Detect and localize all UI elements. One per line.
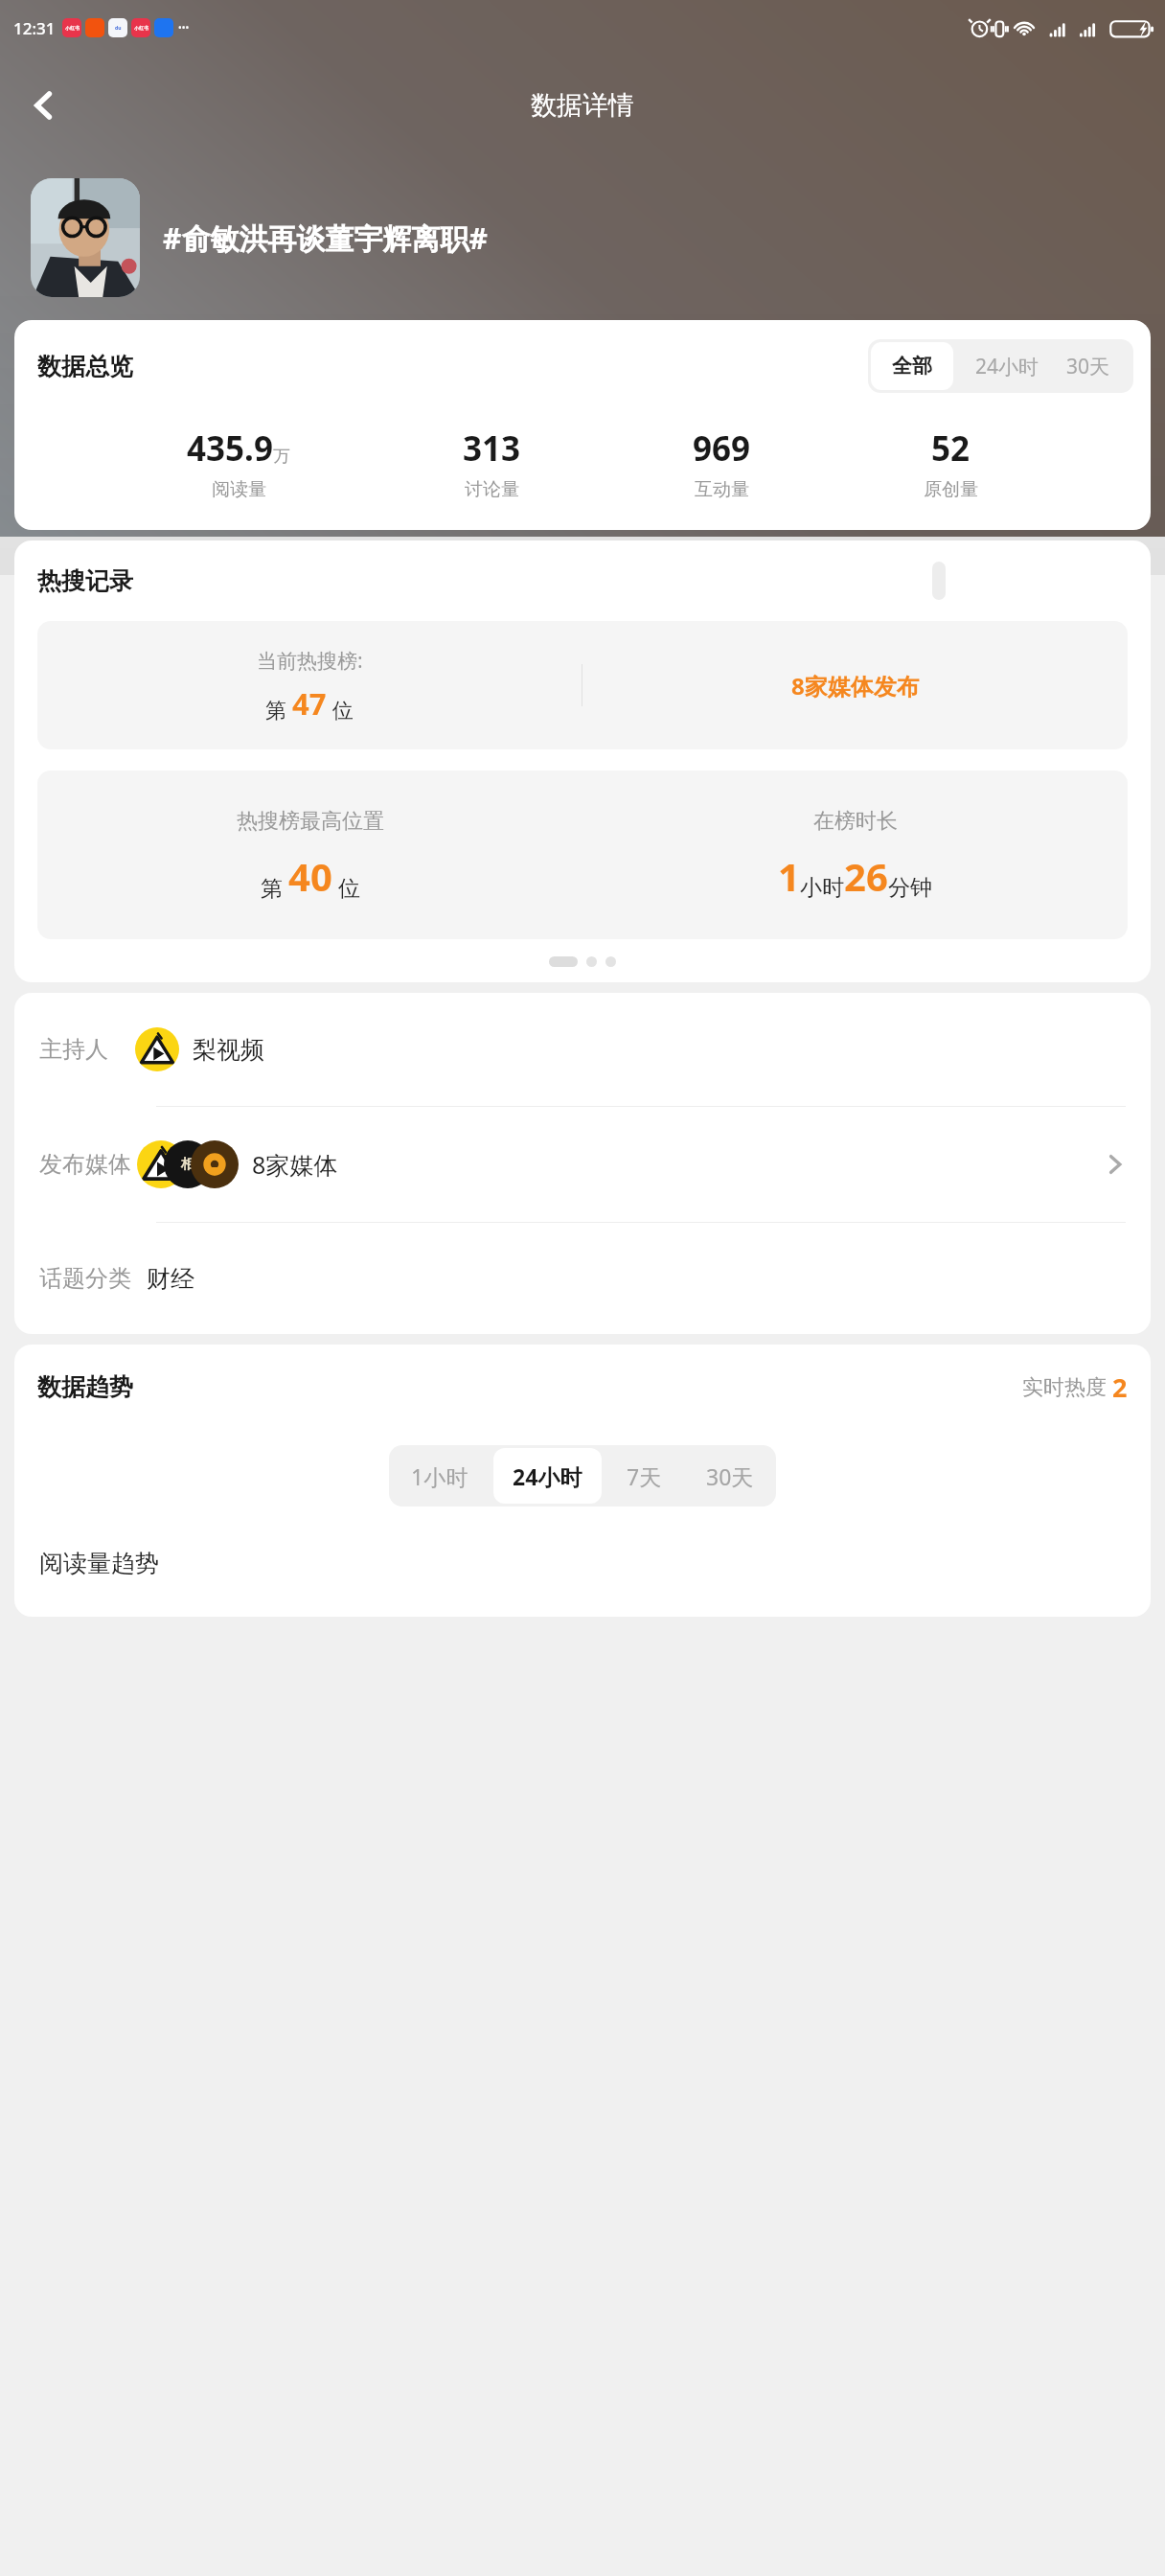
staticText: 阅读量趋势	[39, 1549, 159, 1578]
staticText: 万	[273, 446, 290, 468]
staticText: 435.9	[187, 425, 273, 471]
staticText: 热搜记录	[37, 566, 133, 596]
staticText: 30天	[1066, 353, 1110, 380]
staticText: 2	[1112, 1369, 1128, 1405]
staticText: 26	[844, 850, 888, 902]
button[interactable]: 发布媒体	[14, 1107, 1151, 1222]
staticText: 相	[181, 1156, 194, 1173]
staticText: 47	[292, 683, 327, 724]
button[interactable]: 主持人	[14, 993, 1151, 1106]
staticText: 梨视频	[193, 1035, 264, 1065]
staticText: 原创量	[924, 478, 978, 501]
staticText: 第	[261, 872, 288, 902]
staticText: 热搜榜最高位置	[237, 808, 384, 835]
staticText: 24小时	[975, 353, 1039, 380]
button[interactable]: 30天	[1059, 339, 1133, 393]
staticText: 话题分类	[39, 1264, 131, 1293]
button[interactable]: 返回	[10, 71, 79, 140]
staticText: 讨论量	[465, 478, 519, 501]
staticText: 数据趋势	[37, 1372, 133, 1402]
button[interactable]: 7天	[605, 1445, 684, 1506]
button[interactable]: 全部	[871, 342, 953, 390]
button[interactable]: 24小时	[956, 339, 1059, 393]
staticText: 实时热度	[1022, 1374, 1107, 1401]
staticText: 24小时	[513, 1461, 582, 1491]
staticText: 互动量	[695, 478, 749, 501]
staticText: 313	[463, 425, 521, 471]
staticText: 52	[931, 425, 971, 471]
staticText: 1	[778, 850, 800, 902]
button[interactable]: 30天	[684, 1445, 776, 1506]
staticText: du	[115, 25, 122, 32]
button[interactable]: 热搜榜最高位置	[37, 770, 1128, 939]
staticText: 30天	[706, 1461, 754, 1491]
staticText: 全部	[892, 354, 932, 379]
button[interactable]: 当前热搜榜:	[37, 621, 1128, 749]
staticText: 第	[265, 695, 292, 724]
staticText: 数据总览	[37, 352, 133, 381]
button[interactable]: #俞敏洪再谈董宇辉离职#	[31, 178, 1134, 297]
staticText: 8家媒体发布	[791, 670, 920, 701]
button[interactable]: 话题分类	[14, 1223, 1151, 1334]
staticText: 小红书	[134, 25, 148, 31]
staticText: 小时	[800, 874, 844, 902]
staticText: 位	[332, 872, 360, 902]
staticText: 分钟	[888, 874, 932, 902]
staticText: 7天	[627, 1461, 662, 1491]
staticText: 12:31	[13, 17, 56, 39]
staticText: 发布媒体	[39, 1150, 131, 1179]
staticText: 969	[693, 425, 751, 471]
staticText: 40	[288, 850, 332, 902]
staticText: 8家媒体	[252, 1148, 338, 1181]
staticText: •••	[178, 21, 190, 34]
staticText: 在榜时长	[813, 808, 898, 835]
staticText: #俞敏洪再谈董宇辉离职#	[163, 218, 488, 258]
staticText: 阅读量	[212, 478, 266, 501]
staticText: 当前热搜榜:	[257, 647, 363, 675]
staticText: 数据详情	[531, 89, 634, 122]
staticText: 1小时	[411, 1461, 468, 1491]
button[interactable]: 1小时	[389, 1445, 491, 1506]
staticText: 财经	[147, 1264, 194, 1294]
staticText: 小红书	[65, 25, 80, 31]
button[interactable]: 24小时	[493, 1448, 602, 1504]
staticText: 位	[327, 695, 354, 724]
staticText: 主持人	[39, 1035, 108, 1064]
